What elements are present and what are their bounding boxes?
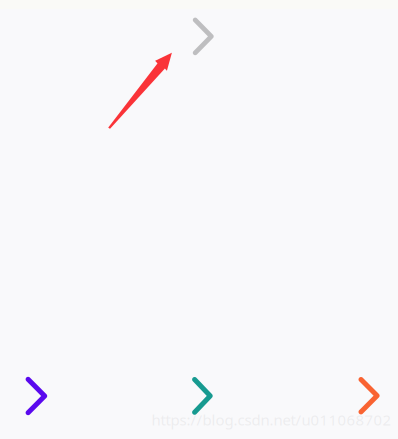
button[interactable]: Orange chevron [347,374,391,418]
button[interactable]: Teal chevron [180,374,224,418]
staticText: https://blog.csdn.net/u011068702 [151,409,391,430]
button[interactable]: Purple chevron [14,374,58,418]
button[interactable]: Show more [181,14,225,58]
